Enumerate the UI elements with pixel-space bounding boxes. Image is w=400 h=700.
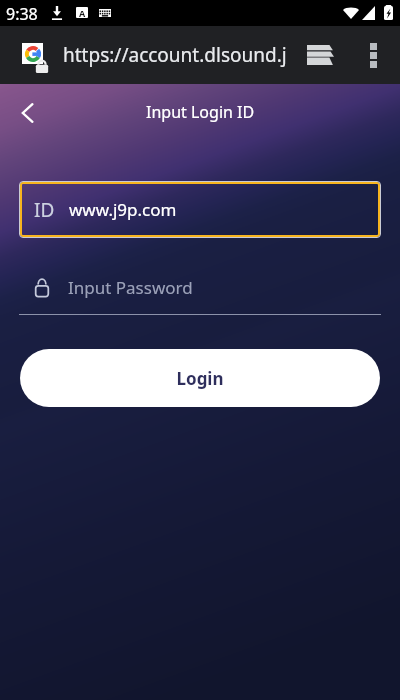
staticText: Login — [176, 367, 224, 390]
button[interactable]: Tabs — [293, 35, 347, 75]
button[interactable]: Input Password — [19, 258, 381, 315]
staticText: https://account.dlsound.j — [63, 42, 287, 68]
button[interactable]: ID — [20, 182, 380, 237]
staticText: Input Login ID — [146, 101, 255, 123]
button[interactable]: Back — [0, 86, 54, 140]
button[interactable]: More options — [353, 35, 394, 76]
staticText: www.j9p.com — [69, 198, 177, 221]
staticText: 9:38 — [6, 3, 38, 25]
button[interactable]: Login — [20, 349, 380, 407]
staticText: ID — [34, 197, 55, 223]
staticText: Input Password — [68, 276, 193, 299]
staticText: A — [79, 7, 86, 18]
